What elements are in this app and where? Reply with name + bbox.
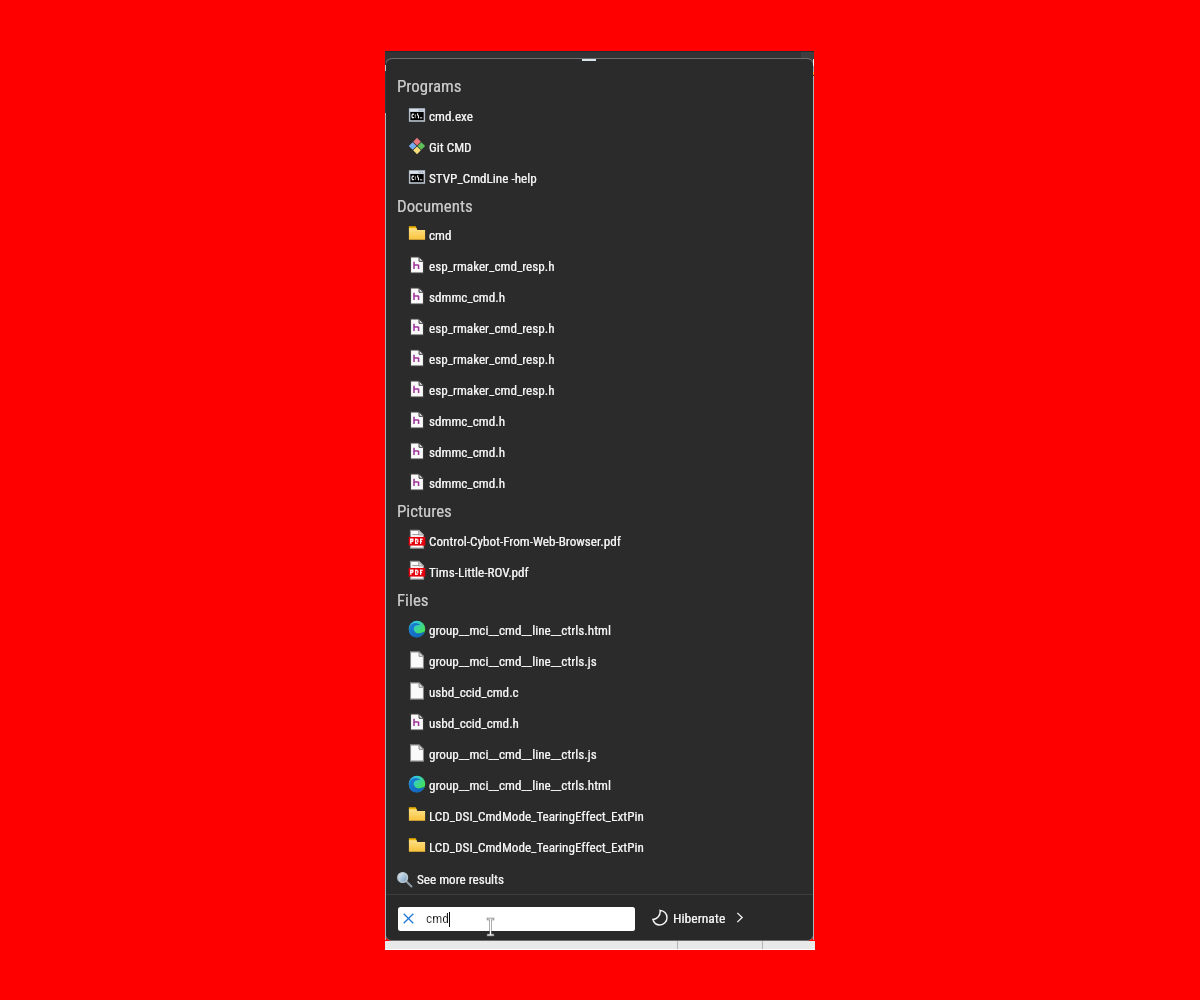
button[interactable]: esp_rmaker_cmd_resp.h xyxy=(386,311,813,342)
staticText: sdmmc_cmd.h xyxy=(429,476,505,491)
button[interactable]: sdmmc_cmd.h xyxy=(386,435,813,466)
button[interactable]: cmd.exe xyxy=(386,99,813,130)
button[interactable]: group__mci__cmd__line__ctrls.html xyxy=(386,613,813,644)
button[interactable]: Git CMD xyxy=(386,130,813,161)
staticText: Control-Cybot-From-Web-Browser.pdf xyxy=(429,534,621,549)
button[interactable]: sdmmc_cmd.h xyxy=(386,466,813,497)
staticText: group__mci__cmd__line__ctrls.html xyxy=(429,778,611,793)
staticText: group__mci__cmd__line__ctrls.js xyxy=(429,747,597,762)
staticText: Programs xyxy=(397,76,462,96)
button[interactable]: Tims-Little-ROV.pdf xyxy=(386,555,813,586)
button[interactable]: esp_rmaker_cmd_resp.h xyxy=(386,342,813,373)
staticText: sdmmc_cmd.h xyxy=(429,414,505,429)
staticText: cmd.exe xyxy=(429,109,473,124)
button[interactable]: sdmmc_cmd.h xyxy=(386,404,813,435)
button[interactable]: cmd xyxy=(386,218,813,249)
staticText: group__mci__cmd__line__ctrls.js xyxy=(429,654,597,669)
button[interactable]: esp_rmaker_cmd_resp.h xyxy=(386,249,813,280)
other: Clear search xyxy=(403,913,414,924)
staticText: esp_rmaker_cmd_resp.h xyxy=(429,259,555,274)
staticText: sdmmc_cmd.h xyxy=(429,290,505,305)
button[interactable]: group__mci__cmd__line__ctrls.js xyxy=(386,644,813,675)
button[interactable]: esp_rmaker_cmd_resp.h xyxy=(386,373,813,404)
button[interactable]: group__mci__cmd__line__ctrls.html xyxy=(386,768,813,799)
button[interactable]: LCD_DSI_CmdMode_TearingEffect_ExtPin xyxy=(386,799,813,830)
staticText: esp_rmaker_cmd_resp.h xyxy=(429,321,555,336)
staticText: Git CMD xyxy=(429,140,472,155)
button[interactable]: Hibernate xyxy=(651,908,745,927)
staticText: LCD_DSI_CmdMode_TearingEffect_ExtPin xyxy=(429,840,644,855)
staticText: LCD_DSI_CmdMode_TearingEffect_ExtPin xyxy=(429,809,644,824)
staticText: Pictures xyxy=(397,501,452,521)
button[interactable]: Control-Cybot-From-Web-Browser.pdf xyxy=(386,524,813,555)
button[interactable]: usbd_ccid_cmd.h xyxy=(386,706,813,737)
staticText: group__mci__cmd__line__ctrls.html xyxy=(429,623,611,638)
staticText: esp_rmaker_cmd_resp.h xyxy=(429,383,555,398)
staticText: STVP_CmdLine -help xyxy=(429,171,537,186)
button[interactable]: LCD_DSI_CmdMode_TearingEffect_ExtPin xyxy=(386,830,813,861)
button[interactable]: Clear search xyxy=(398,907,635,931)
staticText: Hibernate xyxy=(673,910,726,926)
staticText: Tims-Little-ROV.pdf xyxy=(429,565,529,580)
staticText: usbd_ccid_cmd.h xyxy=(429,716,519,731)
staticText: sdmmc_cmd.h xyxy=(429,445,505,460)
button[interactable]: sdmmc_cmd.h xyxy=(386,280,813,311)
staticText: See more results xyxy=(417,872,504,887)
staticText: Documents xyxy=(397,196,473,216)
staticText: Files xyxy=(397,590,429,610)
staticText: usbd_ccid_cmd.c xyxy=(429,685,519,700)
button[interactable]: STVP_CmdLine -help xyxy=(386,161,813,192)
staticText: esp_rmaker_cmd_resp.h xyxy=(429,352,555,367)
staticText: cmd xyxy=(429,228,452,243)
button[interactable]: group__mci__cmd__line__ctrls.js xyxy=(386,737,813,768)
button[interactable]: See more results xyxy=(386,864,813,895)
staticText: cmd xyxy=(426,911,449,927)
button[interactable]: usbd_ccid_cmd.c xyxy=(386,675,813,706)
